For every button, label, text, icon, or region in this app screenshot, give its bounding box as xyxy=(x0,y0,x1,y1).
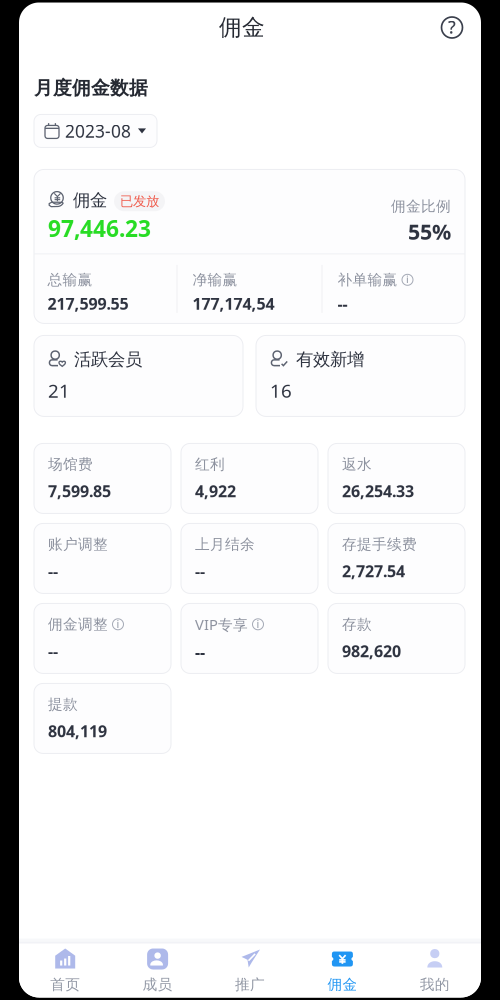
staticText: 净输赢 xyxy=(192,271,237,289)
staticText: 总输赢 xyxy=(47,271,92,289)
button[interactable]: 存款 xyxy=(328,603,465,673)
staticText: -- xyxy=(337,293,347,314)
button[interactable]: 存提手续费 xyxy=(328,523,465,593)
button[interactable]: 有效新增 xyxy=(256,335,465,416)
staticText: 已发放 xyxy=(120,193,159,209)
button[interactable]: 推广 xyxy=(204,938,296,997)
staticText: 首页 xyxy=(50,975,80,993)
staticText: 月度佣金数据 xyxy=(34,76,148,99)
staticText: ? xyxy=(448,15,456,38)
staticText: 补单输赢 xyxy=(337,271,397,289)
button[interactable]: 提款 xyxy=(34,683,171,753)
staticText: i xyxy=(406,272,409,286)
staticText: 推广 xyxy=(235,975,265,993)
button[interactable]: 返水 xyxy=(328,443,465,513)
button[interactable]: 成员 xyxy=(111,938,204,997)
button[interactable]: 账户调整 xyxy=(34,523,171,593)
staticText: 佣金比例 xyxy=(391,197,451,215)
staticText: 55% xyxy=(408,217,451,246)
staticText: 有效新增 xyxy=(296,349,364,370)
staticText: 场馆费 xyxy=(48,455,93,473)
staticText: 账户调整 xyxy=(48,535,108,553)
staticText: 返水 xyxy=(342,455,372,473)
staticText: -- xyxy=(48,560,58,581)
staticText: 2023-08 xyxy=(65,119,131,142)
staticText: 177,174,54 xyxy=(192,293,274,314)
staticText: 4,922 xyxy=(195,480,236,501)
staticText: 佣金 xyxy=(327,975,357,993)
staticText: 红利 xyxy=(195,455,225,473)
staticText: 804,119 xyxy=(48,720,107,741)
button[interactable]: 场馆费 xyxy=(34,443,171,513)
staticText: -- xyxy=(195,641,205,662)
button[interactable]: 上月结余 xyxy=(181,523,318,593)
staticText: 7,599.85 xyxy=(48,480,111,501)
staticText: i xyxy=(256,617,259,631)
staticText: 存款 xyxy=(342,615,372,633)
button[interactable]: 我的 xyxy=(389,938,481,997)
staticText: 217,599.55 xyxy=(47,293,128,314)
staticText: 活跃会员 xyxy=(74,349,142,370)
staticText: 提款 xyxy=(48,695,78,713)
staticText: VIP专享 xyxy=(195,614,248,634)
button[interactable]: 佣金调整 xyxy=(34,603,171,673)
staticText: 佣金 xyxy=(73,190,107,211)
button[interactable]: Help xyxy=(430,7,474,51)
staticText: i xyxy=(116,617,119,631)
staticText: 我的 xyxy=(420,975,450,993)
button[interactable]: 佣金 xyxy=(296,938,389,997)
staticText: 成员 xyxy=(143,975,173,993)
button[interactable]: 首页 xyxy=(19,938,111,997)
staticText: 佣金 xyxy=(219,14,265,41)
staticText: 26,254.33 xyxy=(342,480,414,501)
button[interactable]: 活跃会员 xyxy=(34,335,243,416)
staticText: 2,727.54 xyxy=(342,560,405,581)
button[interactable]: 红利 xyxy=(181,443,318,513)
button[interactable]: 2023-08 xyxy=(34,114,157,147)
staticText: 21 xyxy=(48,378,70,403)
staticText: -- xyxy=(195,560,205,581)
staticText: 佣金调整 xyxy=(48,615,108,633)
staticText: -- xyxy=(48,640,58,661)
staticText: 982,620 xyxy=(342,640,401,661)
button[interactable]: VIP专享 xyxy=(181,603,318,673)
staticText: 16 xyxy=(270,378,292,403)
staticText: 存提手续费 xyxy=(342,535,417,553)
staticText: 97,446.23 xyxy=(48,213,151,243)
staticText: 上月结余 xyxy=(195,535,255,553)
